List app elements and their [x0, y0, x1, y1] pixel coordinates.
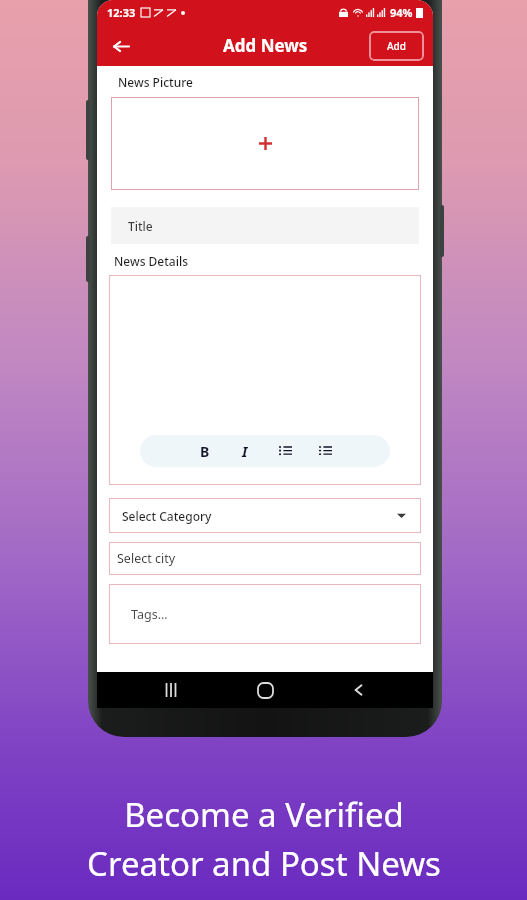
button[interactable]: Back: [339, 672, 379, 708]
staticText: Title: [128, 218, 153, 234]
button[interactable]: Tags...: [109, 584, 421, 644]
button[interactable]: Italic: [233, 439, 257, 463]
button[interactable]: Add picture: [111, 97, 419, 190]
staticText: News Picture: [118, 74, 193, 90]
button[interactable]: Numbered list: [313, 439, 337, 463]
button[interactable]: Bold: [193, 439, 217, 463]
button[interactable]: Bold: [109, 275, 421, 485]
staticText: Tags...: [131, 606, 168, 623]
staticText: Add: [387, 39, 406, 53]
button[interactable]: Select city: [109, 542, 421, 575]
button[interactable]: Title: [111, 207, 419, 244]
staticText: Select Category: [122, 508, 212, 524]
staticText: I: [242, 442, 248, 461]
staticText: News Details: [114, 253, 189, 269]
staticText: Add News: [223, 34, 308, 57]
button[interactable]: Add: [369, 31, 424, 61]
staticText: Select city: [117, 550, 176, 567]
staticText: 94%: [390, 5, 413, 20]
button[interactable]: Back: [103, 29, 137, 63]
button[interactable]: Recents: [151, 672, 191, 708]
staticText: B: [200, 442, 210, 461]
staticText: Become a Verified: [124, 792, 404, 837]
button[interactable]: Home: [245, 672, 285, 708]
staticText: 12:33: [107, 5, 136, 20]
button[interactable]: Select Category: [109, 498, 421, 533]
staticText: Creator and Post News: [87, 841, 441, 886]
button[interactable]: Bullet list: [273, 439, 297, 463]
